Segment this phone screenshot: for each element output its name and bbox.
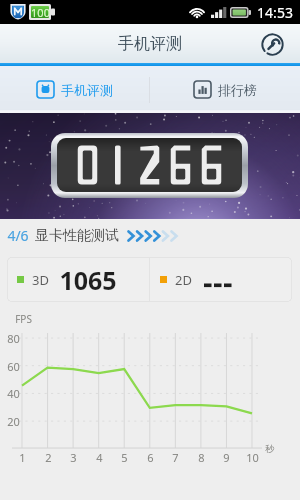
staticText: 2 bbox=[45, 450, 52, 465]
staticText: 80 bbox=[7, 331, 20, 346]
staticText: 1 bbox=[19, 450, 26, 465]
staticText: 手机评测 bbox=[61, 82, 113, 98]
staticText: 手机评测 bbox=[118, 34, 182, 54]
staticText: 5 bbox=[121, 450, 128, 465]
staticText: 3D bbox=[32, 271, 49, 289]
staticText: 100 bbox=[31, 5, 50, 20]
staticText: 7 bbox=[172, 450, 179, 465]
staticText: 6 bbox=[147, 450, 154, 465]
staticText: 3 bbox=[70, 450, 77, 465]
staticText: 4/6 bbox=[7, 226, 29, 245]
button[interactable]: 排行榜 bbox=[150, 66, 300, 113]
staticText: 排行榜 bbox=[218, 82, 257, 98]
staticText: FPS bbox=[15, 312, 32, 326]
staticText: 4 bbox=[96, 450, 103, 465]
button[interactable]: 手机评测 bbox=[0, 66, 149, 113]
staticText: 14:53 bbox=[257, 3, 293, 22]
button[interactable]: Settings bbox=[261, 33, 284, 56]
staticText: 1065 bbox=[59, 263, 117, 297]
staticText: 8 bbox=[198, 450, 205, 465]
staticText: 60 bbox=[7, 359, 20, 374]
staticText: 秒 bbox=[265, 443, 274, 454]
staticText: 显卡性能测试 bbox=[35, 227, 119, 245]
staticText: 9 bbox=[223, 450, 230, 465]
staticText: 20 bbox=[7, 414, 20, 429]
staticText: 10 bbox=[246, 450, 259, 465]
staticText: 40 bbox=[7, 386, 20, 401]
staticText: 2D bbox=[175, 271, 192, 289]
